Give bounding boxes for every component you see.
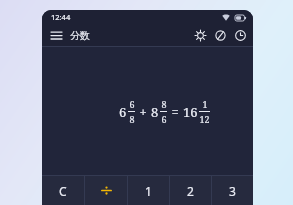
- staticText: 1: [202, 98, 208, 110]
- button[interactable]: 2: [170, 176, 211, 205]
- button[interactable]: C: [42, 176, 84, 205]
- staticText: 16: [183, 103, 198, 121]
- button[interactable]: History: [230, 25, 250, 45]
- button[interactable]: Brightness: [190, 25, 210, 45]
- staticText: 8: [161, 98, 167, 110]
- staticText: 8: [151, 103, 159, 121]
- staticText: +: [136, 103, 151, 121]
- button[interactable]: 1: [128, 176, 169, 205]
- button[interactable]: Divide: [85, 176, 127, 205]
- staticText: 3: [229, 183, 236, 199]
- staticText: 6: [129, 98, 135, 110]
- staticText: 2: [187, 183, 194, 199]
- staticText: 分数: [70, 29, 90, 42]
- staticText: =: [168, 103, 183, 121]
- staticText: 12: [199, 113, 210, 125]
- staticText: 8: [129, 113, 135, 125]
- staticText: 12:44: [51, 12, 71, 22]
- staticText: 6: [161, 113, 167, 125]
- button[interactable]: Menu: [47, 26, 65, 44]
- button[interactable]: Theme: [210, 25, 230, 45]
- button[interactable]: 3: [212, 176, 253, 205]
- staticText: 6: [119, 103, 127, 121]
- staticText: C: [59, 183, 67, 199]
- staticText: 1: [145, 183, 152, 199]
